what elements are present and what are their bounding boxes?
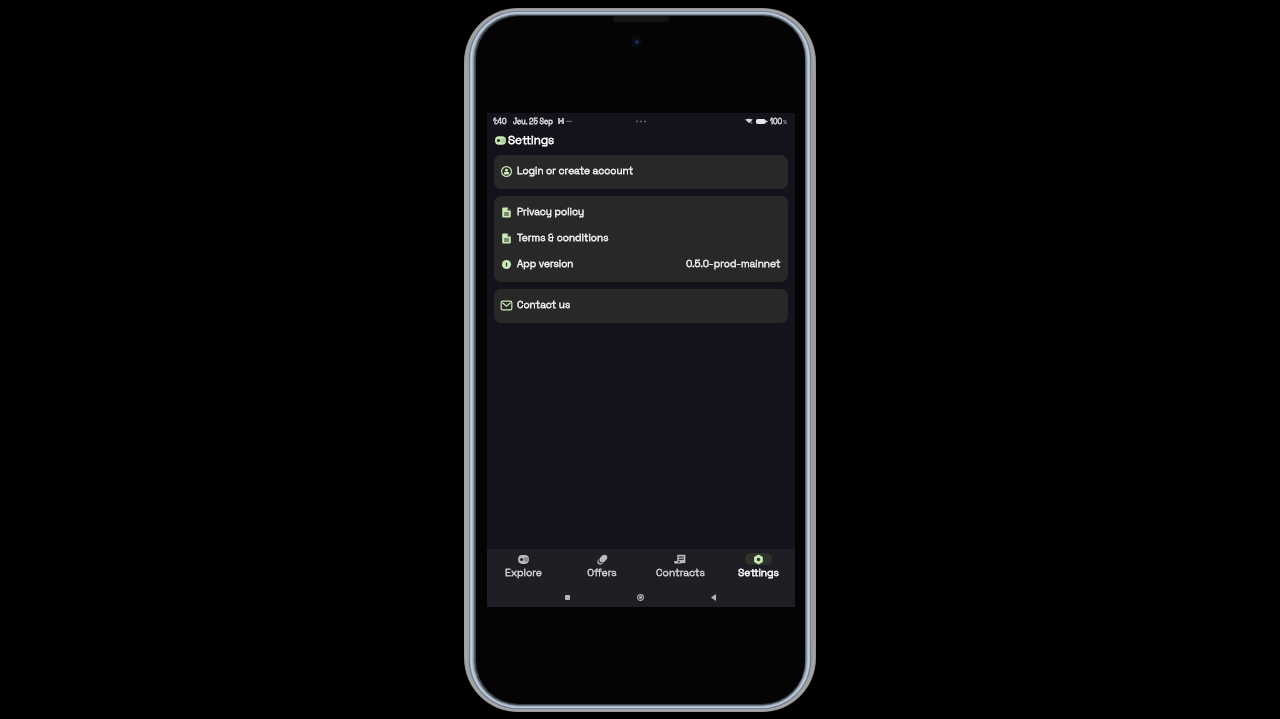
- staticText: Login or create account: [517, 164, 634, 177]
- button[interactable]: App version: [494, 251, 788, 277]
- other: Offers: [589, 553, 616, 565]
- other: Settings: [745, 553, 772, 565]
- staticText: Contact us: [517, 298, 571, 311]
- staticText: 0.5.0-prod-mainnet: [686, 257, 781, 270]
- button[interactable]: Settings: [728, 549, 788, 587]
- button[interactable]: Privacy policy: [494, 199, 788, 225]
- other: Back: [711, 594, 716, 601]
- staticText: Offers: [587, 566, 617, 579]
- button[interactable]: Terms & conditions: [494, 225, 788, 251]
- button[interactable]: Explore: [493, 549, 553, 587]
- staticText: Privacy policy: [517, 205, 585, 218]
- other: Home: [637, 594, 644, 601]
- staticText: 1:40: [493, 117, 507, 126]
- staticText: Settings: [738, 566, 779, 579]
- staticText: Explore: [505, 566, 542, 579]
- staticText: Terms & conditions: [517, 231, 609, 244]
- button[interactable]: Login or create account: [494, 158, 788, 184]
- button[interactable]: Offers: [572, 549, 632, 587]
- staticText: %: [783, 119, 787, 125]
- staticText: Contracts: [656, 566, 705, 579]
- other: Contracts: [667, 553, 694, 565]
- staticText: 100: [770, 117, 783, 126]
- other: Explore: [510, 553, 537, 565]
- other: Recent apps: [565, 595, 570, 600]
- button[interactable]: Contact us: [494, 292, 788, 318]
- staticText: Settings: [508, 133, 555, 148]
- staticText: App version: [517, 257, 574, 270]
- button[interactable]: Contracts: [650, 549, 710, 587]
- staticText: Jeu, 25 Sep: [513, 117, 553, 126]
